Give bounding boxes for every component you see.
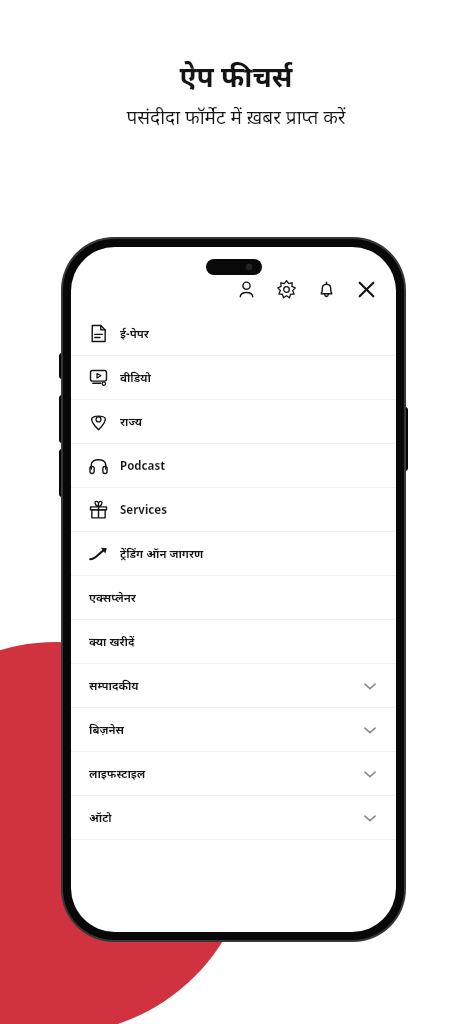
button[interactable]: राज्य bbox=[71, 400, 396, 443]
staticText: ऐप फीचर्स bbox=[179, 57, 293, 95]
staticText: बिज़नेस bbox=[89, 722, 125, 738]
button[interactable]: वीडियो bbox=[71, 356, 396, 399]
staticText: क्या खरीदें bbox=[89, 634, 135, 650]
staticText: सम्पादकीय bbox=[89, 678, 139, 694]
button[interactable]: Close bbox=[350, 273, 382, 305]
button[interactable]: ऑटो bbox=[71, 796, 396, 839]
staticText: एक्सप्लेनर bbox=[89, 590, 136, 606]
staticText: Services bbox=[120, 502, 167, 518]
staticText: वीडियो bbox=[120, 370, 151, 386]
staticText: Podcast bbox=[120, 458, 166, 474]
button[interactable]: Notifications bbox=[310, 273, 342, 305]
staticText: ई-पेपर bbox=[120, 326, 149, 342]
button[interactable]: Settings bbox=[270, 273, 302, 305]
button[interactable]: Podcast bbox=[71, 444, 396, 487]
button[interactable]: लाइफस्टाइल bbox=[71, 752, 396, 795]
staticText: ऑटो bbox=[89, 810, 112, 826]
staticText: राज्य bbox=[120, 414, 142, 430]
button[interactable]: ई-पेपर bbox=[71, 312, 396, 355]
staticText: पसंदीदा फॉर्मेट में ख़बर प्राप्त करें bbox=[126, 104, 346, 130]
button[interactable]: Services bbox=[71, 488, 396, 531]
button[interactable]: सम्पादकीय bbox=[71, 664, 396, 707]
button[interactable]: क्या खरीदें bbox=[71, 620, 396, 663]
button[interactable]: एक्सप्लेनर bbox=[71, 576, 396, 619]
staticText: लाइफस्टाइल bbox=[89, 766, 146, 782]
button[interactable]: बिज़नेस bbox=[71, 708, 396, 751]
staticText: ट्रेंडिंग ऑन जागरण bbox=[120, 546, 204, 562]
button[interactable]: ट्रेंडिंग ऑन जागरण bbox=[71, 532, 396, 575]
button[interactable]: Account bbox=[230, 273, 262, 305]
